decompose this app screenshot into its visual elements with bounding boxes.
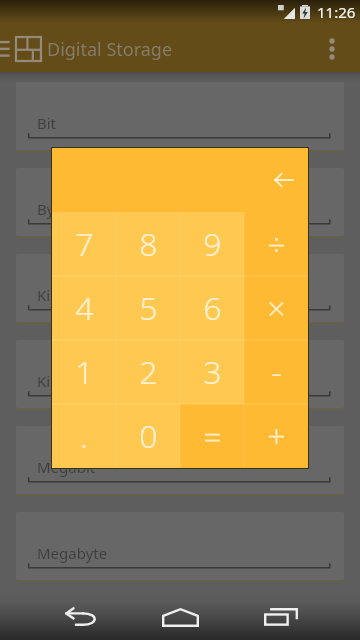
- staticText: 6: [203, 286, 222, 330]
- button[interactable]: ÷: [244, 212, 308, 276]
- staticText: 2: [139, 350, 158, 394]
- button[interactable]: Back: [53, 594, 109, 640]
- staticText: Megabyte: [37, 543, 108, 563]
- staticText: 8: [139, 222, 158, 266]
- button[interactable]: Recent apps: [253, 594, 309, 640]
- staticText: =: [203, 414, 222, 458]
- staticText: 3: [203, 350, 222, 394]
- staticText: ×: [267, 286, 286, 330]
- button[interactable]: Switch unit category: [12, 26, 44, 72]
- staticText: 1: [75, 350, 94, 394]
- button[interactable]: 6: [180, 276, 244, 340]
- button[interactable]: Megabyte: [16, 512, 344, 580]
- button[interactable]: Bit: [16, 82, 344, 150]
- staticText: Digital Storage: [47, 37, 173, 62]
- button[interactable]: 2: [116, 340, 180, 404]
- button[interactable]: 9: [180, 212, 244, 276]
- staticText: .: [80, 414, 88, 458]
- button[interactable]: 8: [116, 212, 180, 276]
- button[interactable]: 1: [52, 340, 116, 404]
- button[interactable]: +: [244, 404, 308, 468]
- staticText: Byte: [37, 199, 69, 219]
- staticText: 7: [75, 222, 94, 266]
- button[interactable]: Megabit: [16, 426, 344, 494]
- staticText: Kilobit: [37, 285, 82, 305]
- button[interactable]: Kilobit: [16, 254, 344, 322]
- button[interactable]: 0: [116, 404, 180, 468]
- button[interactable]: 3: [180, 340, 244, 404]
- staticText: 9: [203, 222, 222, 266]
- button[interactable]: Byte: [16, 168, 344, 236]
- button[interactable]: Open navigation drawer: [0, 26, 12, 72]
- staticText: Bit: [37, 113, 57, 133]
- staticText: -: [271, 350, 282, 394]
- button[interactable]: More options: [316, 26, 360, 72]
- button[interactable]: Kilobyte: [16, 340, 344, 408]
- button[interactable]: Home: [152, 594, 208, 640]
- button[interactable]: ×: [244, 276, 308, 340]
- button[interactable]: -: [244, 340, 308, 404]
- button[interactable]: Backspace: [263, 148, 303, 212]
- staticText: 11:26: [317, 2, 356, 22]
- button[interactable]: 7: [52, 212, 116, 276]
- staticText: +: [267, 414, 286, 458]
- button[interactable]: =: [180, 404, 244, 468]
- staticText: Kilobyte: [37, 371, 94, 391]
- staticText: 5: [139, 286, 158, 330]
- button[interactable]: 4: [52, 276, 116, 340]
- staticText: ÷: [267, 222, 286, 266]
- staticText: 0: [139, 414, 158, 458]
- button[interactable]: .: [52, 404, 116, 468]
- button[interactable]: 5: [116, 276, 180, 340]
- staticText: 4: [75, 286, 94, 330]
- staticText: Megabit: [37, 457, 96, 477]
